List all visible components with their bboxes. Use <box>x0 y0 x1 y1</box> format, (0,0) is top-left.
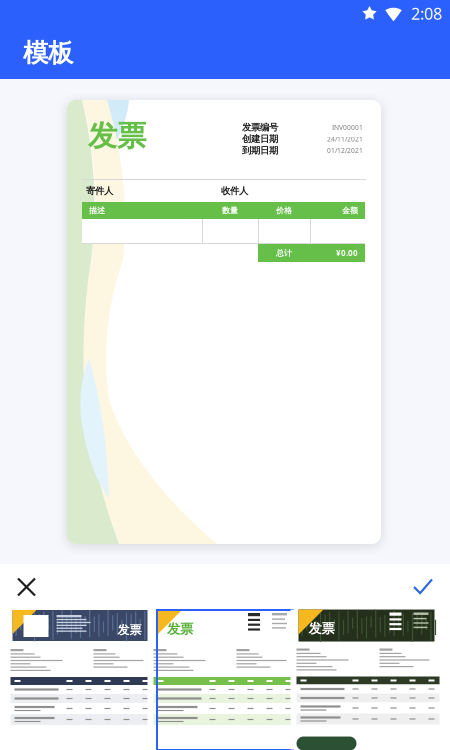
button[interactable]: Template 2, selected <box>157 610 293 750</box>
button[interactable]: Confirm <box>378 564 450 610</box>
staticText: 发票编号 <box>242 122 278 133</box>
staticText: 寄件人 <box>86 185 113 197</box>
staticText: 2:08 <box>411 3 442 24</box>
staticText: 到期日期 <box>242 145 278 156</box>
staticText: 01/12/2021 <box>327 146 363 155</box>
staticText: 总计 <box>276 248 292 258</box>
staticText: 金额 <box>342 206 358 215</box>
staticText: 模板 <box>23 37 73 68</box>
staticText: 发票 <box>88 118 146 154</box>
button[interactable]: Cancel <box>0 564 72 610</box>
staticText: INV00001 <box>332 123 363 132</box>
staticText: 收件人 <box>221 185 248 197</box>
staticText: 描述 <box>89 206 105 215</box>
staticText: 24/11/2021 <box>327 135 363 143</box>
staticText: 数量 <box>222 206 238 215</box>
button[interactable]: Template 1 <box>14 610 150 750</box>
staticText: ¥0.00 <box>336 248 358 258</box>
staticText: 发票 <box>117 623 141 637</box>
staticText: 发票 <box>167 621 193 637</box>
staticText: 发票 <box>308 620 334 637</box>
button[interactable]: Template 3 <box>300 610 436 750</box>
staticText: 创建日期 <box>242 133 278 145</box>
staticText: 价格 <box>276 206 292 215</box>
